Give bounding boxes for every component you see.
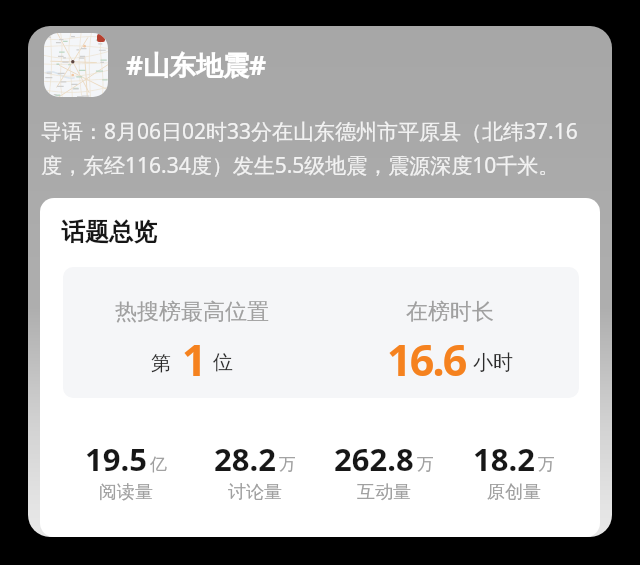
- button[interactable]: 28.2: [190, 438, 319, 504]
- button[interactable]: Map: [44, 33, 267, 97]
- staticText: 位: [213, 350, 233, 375]
- staticText: 在榜时长: [406, 298, 494, 326]
- staticText: 亿: [150, 454, 167, 475]
- button[interactable]: 18.2: [449, 438, 579, 504]
- staticText: 阅读量: [99, 481, 153, 504]
- staticText: 原创量: [487, 481, 541, 504]
- button[interactable]: 话题总览: [40, 198, 600, 537]
- staticText: 万: [417, 454, 434, 475]
- staticText: 热搜榜最高位置: [115, 298, 269, 326]
- staticText: 19.5: [85, 438, 147, 480]
- staticText: 28.2: [214, 438, 276, 480]
- staticText: 讨论量: [228, 481, 282, 504]
- staticText: 导语：8月06日02时33分在山东德州市平原县（北纬37.16度，东经116.3…: [41, 117, 603, 179]
- staticText: 1: [182, 330, 205, 389]
- button[interactable]: 19.5: [61, 438, 190, 504]
- staticText: 互动量: [357, 481, 411, 504]
- staticText: 万: [538, 454, 555, 475]
- staticText: 话题总览: [61, 217, 157, 247]
- staticText: 262.8: [334, 438, 414, 480]
- button[interactable]: Map: [44, 33, 108, 97]
- staticText: 18.2: [473, 438, 535, 480]
- button[interactable]: 262.8: [319, 438, 449, 504]
- staticText: #山东地震#: [126, 47, 267, 83]
- staticText: 第: [151, 351, 171, 376]
- button[interactable]: Map: [28, 26, 612, 537]
- staticText: 小时: [473, 350, 513, 375]
- staticText: 16.6: [387, 330, 466, 389]
- staticText: 万: [279, 454, 296, 475]
